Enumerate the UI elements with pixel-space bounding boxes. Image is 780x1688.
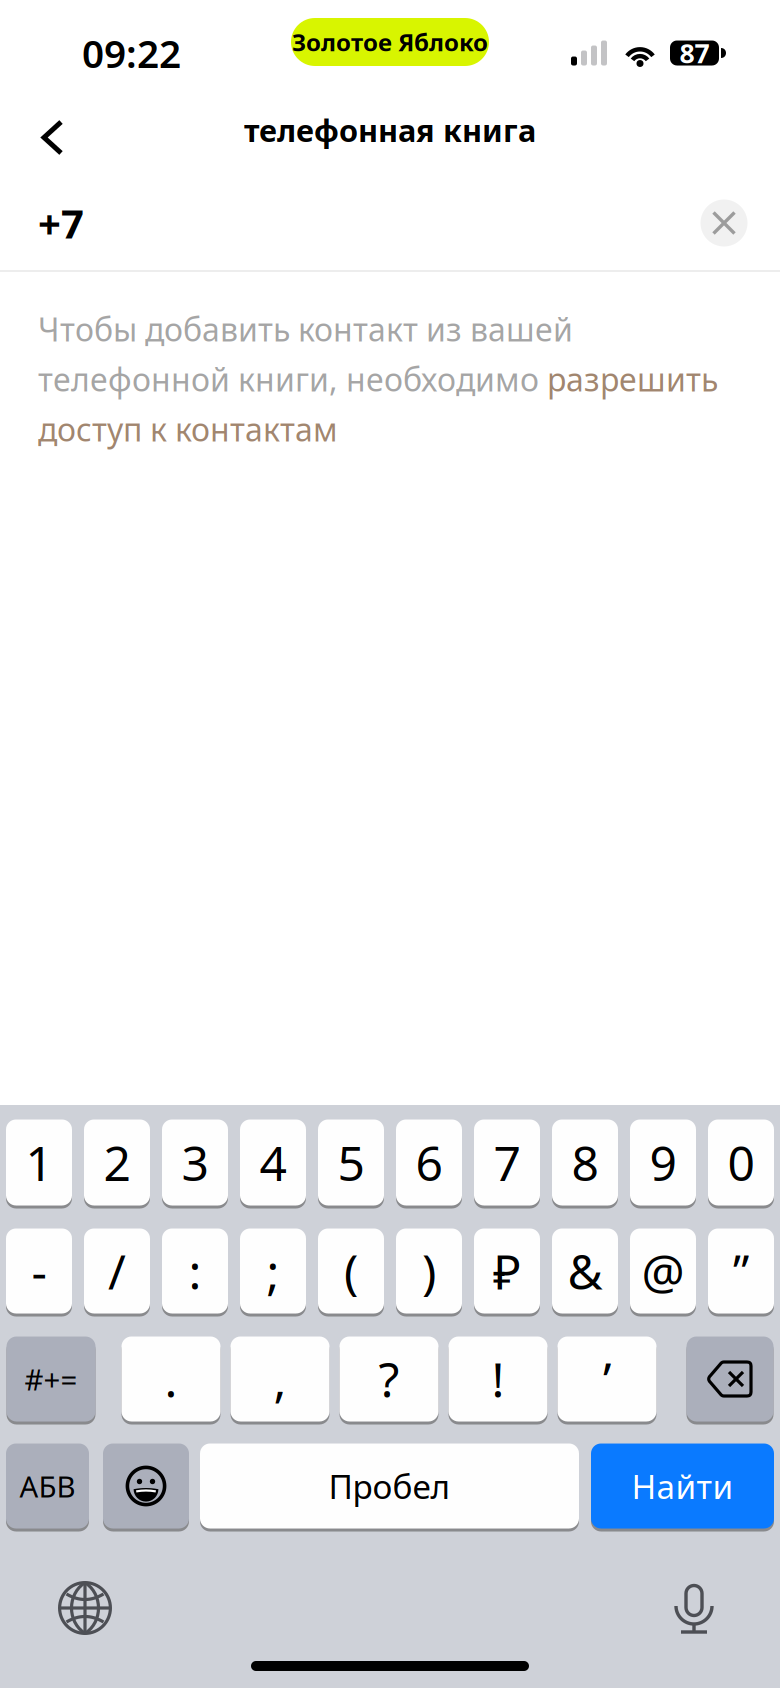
- staticText: &: [567, 1239, 602, 1303]
- staticText: -: [31, 1239, 46, 1303]
- staticText: 8: [571, 1131, 598, 1194]
- button[interactable]: 8: [552, 1121, 618, 1207]
- staticText: 5: [337, 1131, 364, 1194]
- staticText: 0: [727, 1131, 754, 1194]
- staticText: АБВ: [19, 1466, 75, 1505]
- button[interactable]: !: [448, 1338, 547, 1423]
- staticText: ?: [378, 1347, 399, 1411]
- button[interactable]: Emoji: [103, 1445, 189, 1530]
- staticText: Чтобы добавить контакт из вашей: [38, 308, 573, 350]
- button[interactable]: Пробел: [200, 1445, 579, 1530]
- staticText: ;: [266, 1239, 279, 1303]
- button[interactable]: 7: [474, 1121, 540, 1207]
- button[interactable]: #+=: [6, 1338, 95, 1423]
- button[interactable]: 1: [6, 1121, 72, 1207]
- staticText: ,: [273, 1347, 286, 1411]
- staticText: разрешить: [547, 358, 718, 400]
- button[interactable]: Next keyboard: [37, 1568, 133, 1648]
- button[interactable]: 6: [396, 1121, 462, 1207]
- button[interactable]: (: [318, 1230, 384, 1315]
- staticText: Пробел: [328, 1464, 450, 1508]
- button[interactable]: АБВ: [6, 1445, 89, 1530]
- staticText: @: [641, 1239, 684, 1303]
- button[interactable]: ’: [557, 1338, 656, 1423]
- staticText: 1: [25, 1131, 52, 1194]
- staticText: 09:22: [82, 27, 181, 79]
- button[interactable]: 0: [708, 1121, 774, 1207]
- button[interactable]: Delete: [686, 1338, 773, 1423]
- button[interactable]: ”: [708, 1230, 774, 1315]
- staticText: Найти: [631, 1464, 733, 1508]
- button[interactable]: .: [121, 1338, 220, 1423]
- staticText: ”: [733, 1241, 749, 1301]
- staticText: +7: [38, 196, 84, 249]
- staticText: (: [344, 1239, 358, 1303]
- button[interactable]: ?: [339, 1338, 438, 1423]
- button[interactable]: 4: [240, 1121, 306, 1207]
- staticText: 3: [181, 1131, 208, 1194]
- button[interactable]: ₽: [474, 1230, 540, 1315]
- staticText: телефонной книги, необходимо: [38, 358, 547, 400]
- button[interactable]: ;: [240, 1230, 306, 1315]
- button[interactable]: разрешить: [547, 358, 718, 400]
- button[interactable]: 3: [162, 1121, 228, 1207]
- button[interactable]: -: [6, 1230, 72, 1315]
- staticText: Золотое Яблоко: [292, 26, 488, 58]
- staticText: .: [164, 1347, 177, 1411]
- button[interactable]: &: [552, 1230, 618, 1315]
- button[interactable]: @: [630, 1230, 696, 1315]
- staticText: 4: [259, 1131, 286, 1194]
- staticText: 2: [103, 1131, 130, 1194]
- staticText: 7: [493, 1131, 520, 1194]
- button[interactable]: Back: [0, 84, 100, 176]
- staticText: ’: [603, 1347, 611, 1411]
- button[interactable]: 2: [84, 1121, 150, 1207]
- staticText: ₽: [493, 1239, 521, 1303]
- button[interactable]: 5: [318, 1121, 384, 1207]
- staticText: доступ к контактам: [38, 408, 338, 450]
- button[interactable]: Найти: [591, 1445, 774, 1530]
- button[interactable]: :: [162, 1230, 228, 1315]
- button[interactable]: доступ к контактам: [38, 408, 338, 450]
- staticText: 6: [415, 1131, 442, 1194]
- button[interactable]: Clear text: [695, 194, 753, 252]
- staticText: !: [491, 1347, 504, 1411]
- staticText: 87: [679, 35, 709, 71]
- staticText: 9: [649, 1131, 676, 1194]
- button[interactable]: 9: [630, 1121, 696, 1207]
- staticText: #+=: [24, 1359, 77, 1398]
- button[interactable]: /: [84, 1230, 150, 1315]
- button[interactable]: ): [396, 1230, 462, 1315]
- staticText: /: [108, 1239, 126, 1303]
- staticText: телефонная книга: [244, 110, 536, 150]
- button[interactable]: ,: [230, 1338, 329, 1423]
- staticText: ): [422, 1239, 436, 1303]
- button[interactable]: Dictation: [646, 1568, 742, 1648]
- staticText: :: [188, 1239, 201, 1303]
